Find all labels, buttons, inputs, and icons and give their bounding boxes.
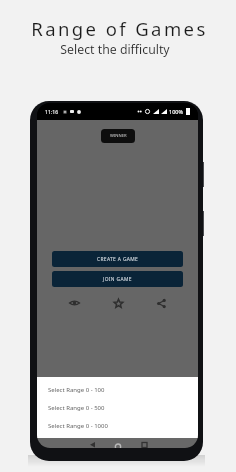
staticText: 100%: [169, 108, 184, 115]
staticText: 11:16: [45, 108, 59, 115]
staticText: Select Range 0 - 100: [48, 386, 105, 394]
button[interactable]: Favourite: [109, 294, 127, 312]
staticText: Select the difficulty: [60, 41, 170, 58]
staticText: Select Range 0 - 500: [48, 404, 105, 412]
button[interactable]: Select Range 0 - 1000: [37, 417, 198, 435]
button[interactable]: Preview: [65, 294, 83, 312]
staticText: WINNER: [110, 133, 127, 139]
button[interactable]: Select Range 0 - 500: [37, 399, 198, 417]
button[interactable]: Share: [152, 294, 170, 312]
button[interactable]: Select Range 0 - 100: [37, 381, 198, 399]
button[interactable]: Home: [106, 442, 130, 448]
button[interactable]: Back: [80, 442, 104, 448]
staticText: Range of Games: [31, 16, 208, 41]
staticText: JOIN GAME: [103, 276, 132, 283]
button[interactable]: JOIN GAME: [52, 271, 183, 287]
button[interactable]: CREATE A GAME: [52, 251, 183, 267]
staticText: Select Range 0 - 1000: [48, 422, 108, 430]
button[interactable]: Recent apps: [132, 442, 156, 448]
button[interactable]: WINNER: [101, 129, 135, 143]
staticText: CREATE A GAME: [97, 256, 139, 263]
